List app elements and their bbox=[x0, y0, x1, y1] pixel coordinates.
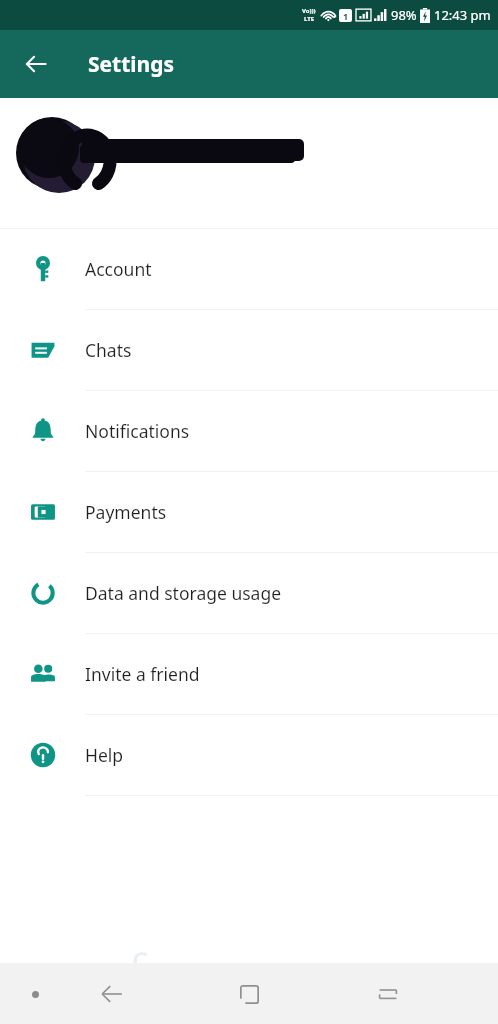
staticText: 1 bbox=[343, 10, 349, 22]
staticText: 98% bbox=[391, 6, 417, 24]
button[interactable]: Data and storage usage bbox=[0, 553, 498, 633]
button[interactable]: Back bbox=[90, 972, 134, 1016]
staticText: Data and storage usage bbox=[85, 581, 282, 605]
staticText: 12:43 pm bbox=[434, 6, 491, 24]
staticText: Payments bbox=[85, 500, 167, 524]
button[interactable]: Invite a friend bbox=[0, 634, 498, 714]
button[interactable]: Help bbox=[0, 715, 498, 795]
staticText: Chats bbox=[85, 338, 132, 362]
staticText: LTE bbox=[304, 15, 315, 23]
button[interactable]: Payments bbox=[0, 472, 498, 552]
button[interactable]: Recent apps bbox=[366, 972, 410, 1016]
staticText: Invite a friend bbox=[85, 662, 200, 686]
button[interactable] bbox=[0, 98, 498, 228]
button[interactable]: Home bbox=[227, 972, 271, 1016]
button[interactable]: Notifications bbox=[0, 391, 498, 471]
staticText: Vo))) bbox=[302, 7, 316, 15]
button[interactable]: Account bbox=[0, 229, 498, 309]
button[interactable]: Back bbox=[12, 40, 60, 88]
staticText: Notifications bbox=[85, 419, 190, 443]
button[interactable]: Chats bbox=[0, 310, 498, 390]
staticText: fonearena bbox=[128, 936, 370, 1007]
staticText: Settings bbox=[88, 50, 175, 79]
staticText: Help bbox=[85, 743, 124, 767]
button[interactable]: Menu dot bbox=[18, 977, 52, 1011]
staticText: Account bbox=[85, 257, 152, 281]
